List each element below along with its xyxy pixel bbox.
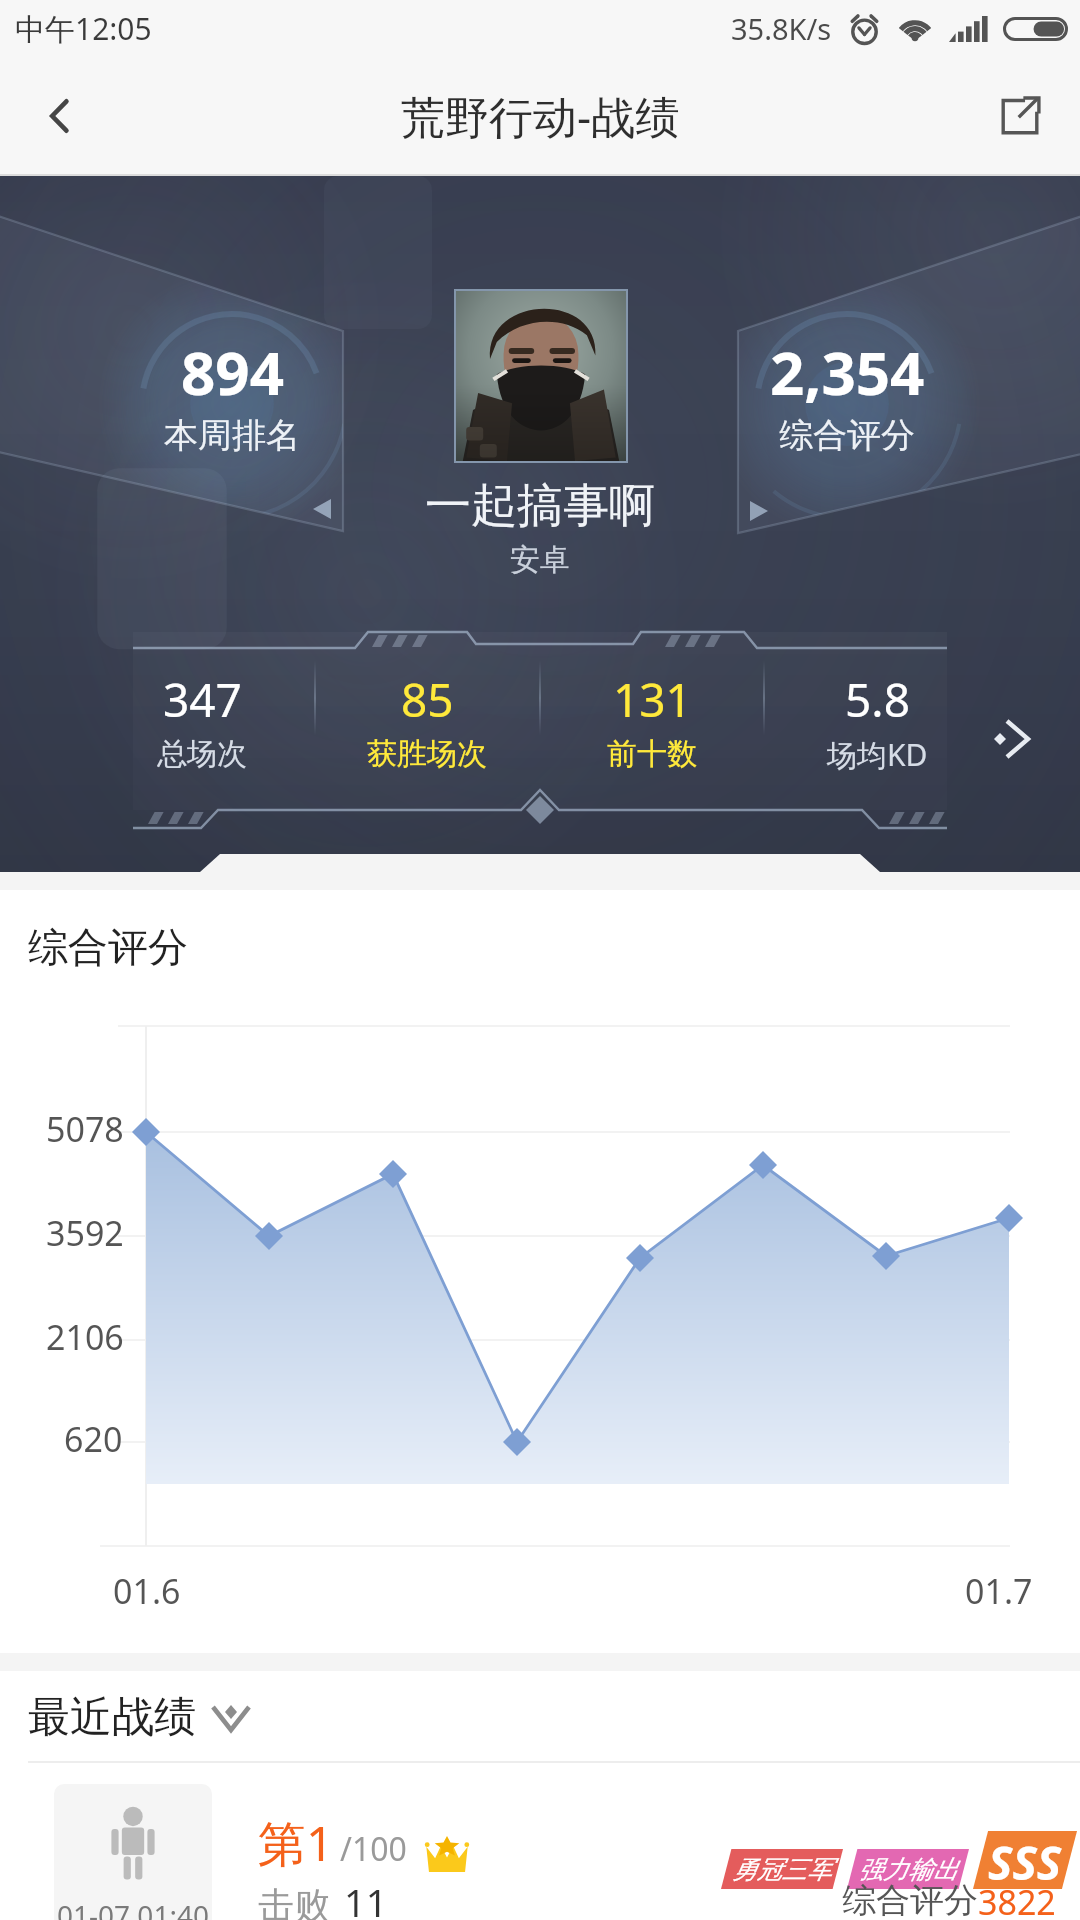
staticText: 35.8K/s — [731, 9, 832, 48]
button[interactable]: Back — [0, 56, 120, 176]
staticText: 综合评分 — [842, 1879, 978, 1920]
staticText: 总场次 — [157, 735, 247, 773]
staticText: 一起搞事啊 — [425, 477, 655, 535]
staticText: 荒野行动-战绩 — [401, 86, 680, 146]
staticText: 勇冠三军 — [732, 1854, 832, 1885]
staticText: 综合评分 — [28, 922, 188, 972]
button[interactable]: Share — [960, 56, 1080, 176]
staticText: 85 — [401, 668, 454, 731]
staticText: 最近战绩 — [28, 1691, 196, 1744]
staticText: 场均KD — [827, 734, 928, 775]
staticText: 5078 — [46, 1106, 124, 1152]
staticText: 本周排名 — [164, 414, 300, 457]
staticText: 11 — [344, 1876, 388, 1920]
button[interactable]: 01-07 01:40 — [0, 1671, 1080, 1920]
staticText: 01.6 — [113, 1568, 181, 1614]
staticText: 131 — [613, 668, 692, 731]
staticText: SSS — [988, 1831, 1062, 1889]
staticText: 安卓 — [510, 541, 570, 579]
staticText: 347 — [163, 668, 242, 731]
button[interactable]: 最近战绩 — [28, 1691, 250, 1744]
button[interactable] — [90, 644, 314, 820]
staticText: 894 — [181, 331, 284, 413]
button[interactable] — [540, 644, 764, 820]
staticText: 前十数 — [607, 735, 697, 773]
button[interactable]: Player avatar — [454, 289, 628, 463]
staticText: 第1 — [258, 1810, 334, 1876]
button[interactable]: More stats — [990, 711, 1046, 767]
staticText: 中午12:05 — [15, 8, 152, 49]
button[interactable] — [315, 644, 539, 820]
staticText: 01.7 — [965, 1568, 1033, 1614]
button[interactable] — [765, 644, 989, 820]
staticText: 击败 — [258, 1883, 330, 1920]
staticText: 强力输出 — [858, 1854, 958, 1885]
staticText: 2106 — [46, 1314, 124, 1360]
staticText: 3822 — [978, 1879, 1056, 1920]
staticText: 综合评分 — [779, 414, 915, 457]
staticText: 获胜场次 — [367, 735, 487, 773]
staticText: 01-07 01:40 — [57, 1896, 209, 1920]
staticText: 620 — [64, 1416, 123, 1462]
staticText: 5.8 — [845, 668, 910, 731]
staticText: 3592 — [46, 1210, 124, 1256]
staticText: /100 — [340, 1827, 407, 1871]
staticText: 2,354 — [770, 331, 925, 413]
